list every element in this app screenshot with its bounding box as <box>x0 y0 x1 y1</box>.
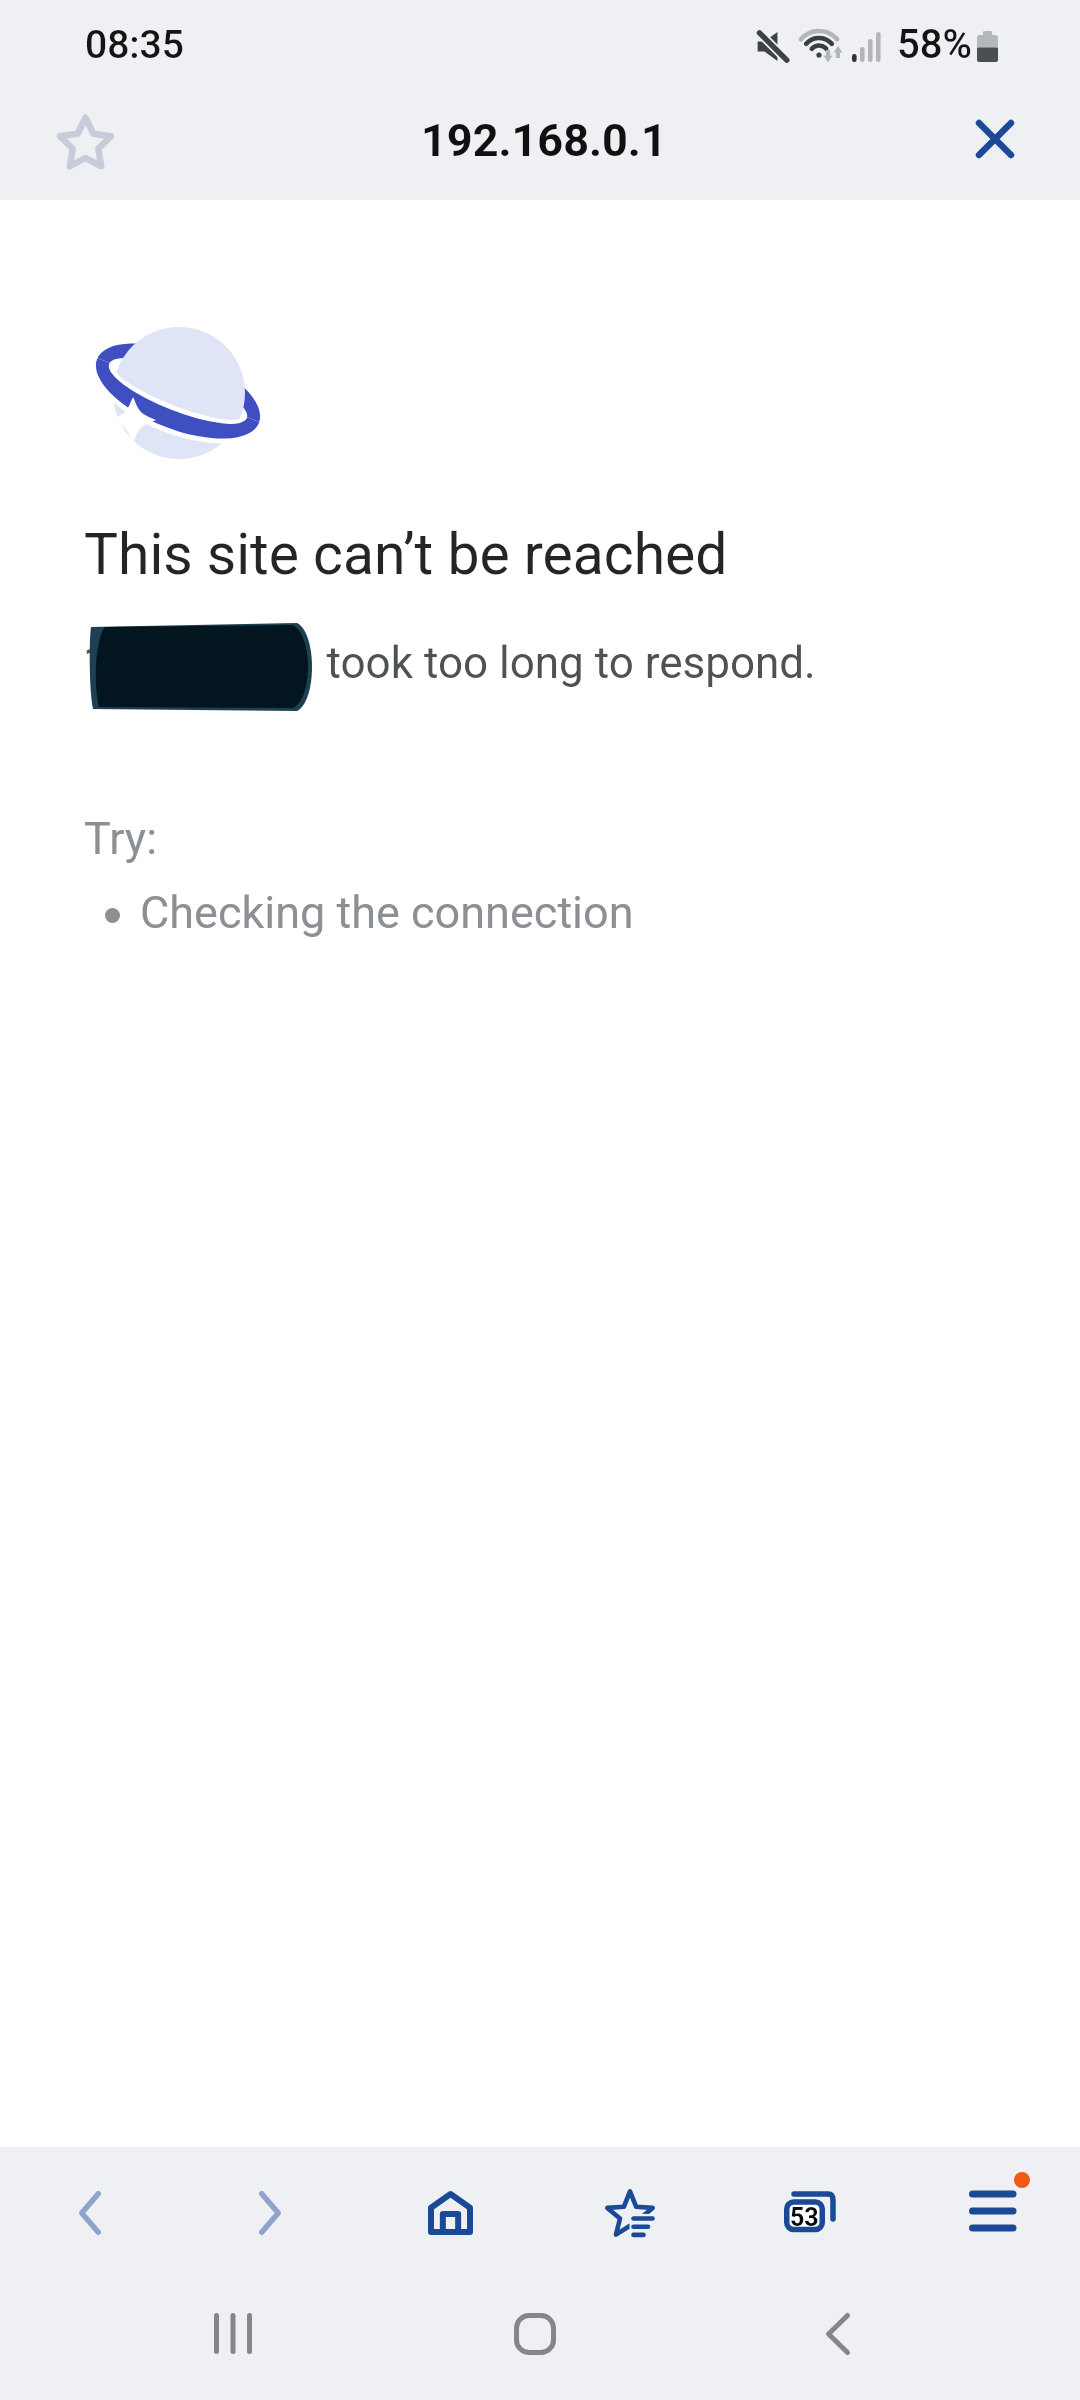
staticText: 192.168.0.1 took too long to respond. <box>83 637 816 689</box>
button[interactable]: Home <box>360 2147 540 2297</box>
staticText: Try: <box>84 812 158 865</box>
staticText: 58% <box>897 21 972 68</box>
staticText: Checking the connection <box>140 886 634 939</box>
button[interactable]: Close <box>947 91 1043 187</box>
button[interactable]: Menu <box>900 2147 1080 2297</box>
button[interactable]: Forward <box>180 2147 360 2297</box>
staticText: 192.168.0.1 <box>421 114 667 167</box>
button[interactable]: Bookmarks <box>540 2147 720 2297</box>
button[interactable]: Add bookmark <box>37 94 133 190</box>
button[interactable]: Recent apps <box>178 2297 288 2400</box>
button[interactable]: Tabs <box>720 2147 900 2297</box>
staticText: This site can’t be reached <box>84 521 728 588</box>
button[interactable]: Home <box>480 2297 590 2400</box>
staticText: 08:35 <box>85 22 184 68</box>
button[interactable]: Back <box>0 2147 180 2297</box>
button[interactable]: Back <box>783 2297 893 2400</box>
staticText: 53 <box>790 2203 819 2232</box>
